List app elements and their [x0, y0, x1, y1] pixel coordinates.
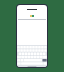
button[interactable]: Keyboard [17, 45, 47, 67]
